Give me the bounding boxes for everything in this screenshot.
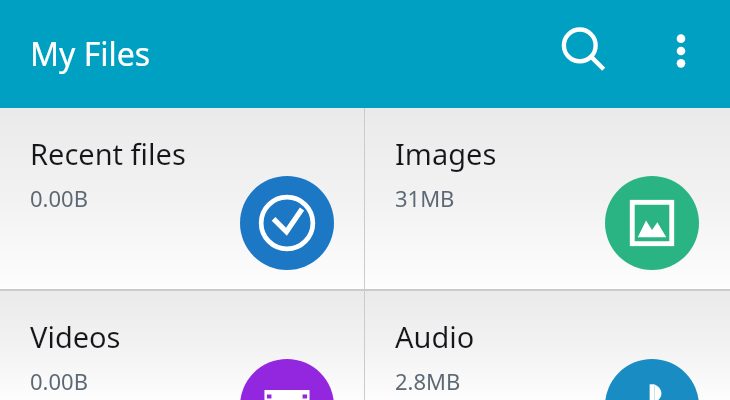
button[interactable]: Audio	[365, 291, 730, 400]
button[interactable]: Images	[365, 108, 730, 289]
staticText: 0.00B	[30, 366, 88, 396]
button[interactable]: More options	[655, 20, 707, 82]
staticText: 0.00B	[30, 183, 88, 213]
staticText: Recent files	[30, 134, 186, 173]
staticText: Videos	[30, 317, 121, 356]
button[interactable]: Recent files	[0, 108, 364, 289]
staticText: 2.8MB	[395, 366, 461, 396]
button[interactable]: Search	[551, 18, 615, 82]
button[interactable]: Videos	[0, 291, 364, 400]
staticText: Images	[395, 134, 497, 173]
staticText: Audio	[395, 317, 475, 356]
staticText: 31MB	[395, 183, 455, 213]
staticText: My Files	[30, 32, 151, 76]
